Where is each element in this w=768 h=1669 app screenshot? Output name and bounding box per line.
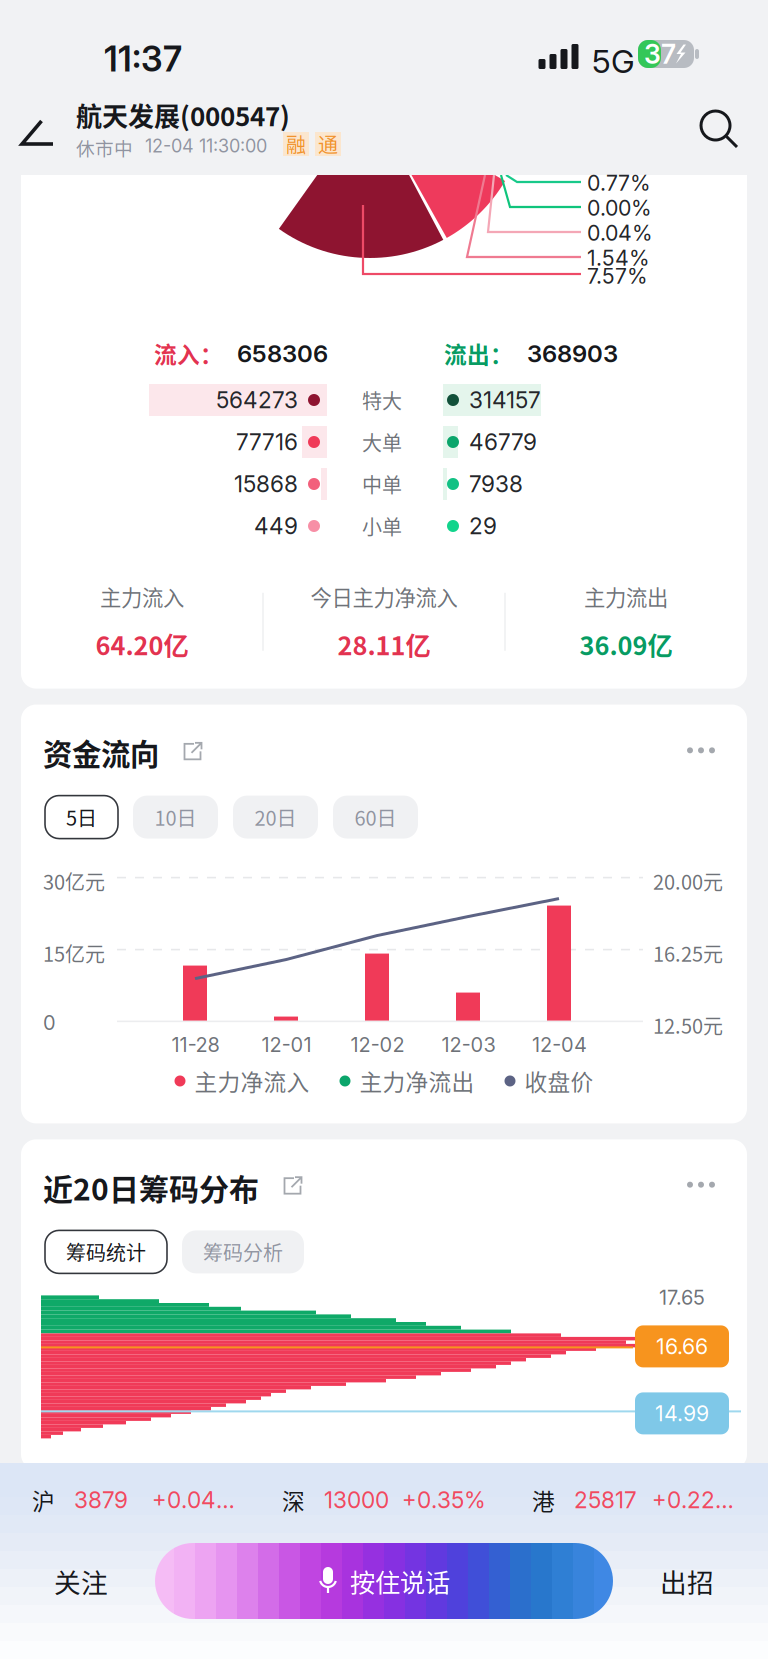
- staticText: 休市中: [76, 134, 133, 161]
- staticText: 航天发展(000547): [76, 96, 290, 134]
- staticText: 7.57%: [587, 263, 648, 289]
- staticText: 20日: [254, 803, 296, 832]
- button[interactable]: 关注: [26, 1543, 136, 1619]
- staticText: 流入：: [154, 337, 223, 370]
- staticText: 近20日筹码分布: [43, 1166, 259, 1209]
- staticText: 12-04: [532, 1033, 587, 1057]
- staticText: 主力净流入: [194, 1065, 309, 1097]
- button[interactable]: 出招: [632, 1543, 742, 1619]
- staticText: 12.50元: [653, 1011, 723, 1040]
- staticText: 11-28: [171, 1033, 219, 1057]
- staticText: 0.77%: [587, 170, 651, 196]
- button[interactable]: 10日: [133, 796, 218, 839]
- button[interactable]: 20日: [233, 796, 318, 839]
- staticText: 20.00元: [653, 867, 723, 896]
- staticText: 主力净流出: [359, 1065, 474, 1097]
- staticText: 特大: [362, 385, 402, 414]
- button[interactable]: 筹码分析: [182, 1230, 304, 1273]
- staticText: 564273: [216, 386, 298, 414]
- staticText: 60日: [354, 803, 396, 832]
- staticText: 12-02: [350, 1033, 404, 1057]
- staticText: 12-03: [441, 1033, 495, 1057]
- staticText: 深: [282, 1484, 305, 1516]
- staticText: 今日主力净流入: [310, 581, 457, 612]
- button[interactable]: More options: [681, 735, 721, 765]
- staticText: 中单: [362, 469, 402, 498]
- staticText: 15亿元: [43, 939, 105, 968]
- staticText: 流出：: [444, 337, 513, 370]
- button[interactable]: More options: [681, 1170, 721, 1200]
- staticText: 关注: [54, 1562, 108, 1600]
- button[interactable]: 港: [532, 1477, 736, 1523]
- button[interactable]: Share: [273, 1169, 313, 1203]
- button[interactable]: 深: [282, 1477, 486, 1523]
- staticText: 16.25元: [653, 939, 723, 968]
- staticText: +0.22%: [652, 1486, 736, 1514]
- staticText: 12-04 11:30:00: [145, 135, 267, 157]
- button[interactable]: 沪: [32, 1477, 236, 1523]
- button[interactable]: 按住说话: [155, 1543, 613, 1619]
- staticText: 按住说话: [350, 1563, 450, 1599]
- staticText: 10日: [154, 803, 196, 832]
- staticText: 主力流入: [100, 581, 184, 612]
- staticText: 0.04%: [587, 220, 653, 246]
- staticText: 港: [532, 1484, 555, 1516]
- staticText: 收盘价: [524, 1065, 593, 1097]
- staticText: 36.09亿: [579, 626, 672, 663]
- staticText: 11:37: [104, 38, 182, 80]
- staticText: 658306: [237, 339, 328, 368]
- staticText: 5日: [66, 803, 97, 832]
- staticText: 出招: [660, 1562, 714, 1600]
- staticText: 小单: [362, 511, 402, 540]
- staticText: 7938: [469, 470, 523, 498]
- staticText: 30亿元: [43, 867, 105, 896]
- staticText: 449: [254, 512, 298, 540]
- button[interactable]: Share: [173, 734, 213, 768]
- button[interactable]: Back: [8, 104, 66, 162]
- staticText: 1.54%: [587, 245, 650, 271]
- staticText: +0.04%: [152, 1486, 236, 1514]
- staticText: 通: [318, 129, 338, 158]
- staticText: 沪: [32, 1484, 55, 1516]
- staticText: 64.20亿: [95, 626, 188, 663]
- staticText: +0.35%: [402, 1486, 486, 1514]
- staticText: 37: [644, 38, 676, 70]
- staticText: 15868: [234, 470, 298, 498]
- staticText: 314157: [469, 386, 541, 414]
- staticText: 29: [469, 512, 497, 540]
- button[interactable]: 60日: [333, 796, 418, 839]
- button[interactable]: 筹码统计: [45, 1230, 167, 1273]
- button[interactable]: Search: [692, 102, 750, 160]
- staticText: 25817: [574, 1486, 637, 1514]
- staticText: 13000: [324, 1486, 389, 1514]
- staticText: 12-01: [261, 1033, 311, 1057]
- staticText: 3879: [74, 1486, 128, 1514]
- staticText: 16.66: [656, 1333, 708, 1359]
- staticText: 14.99: [655, 1400, 709, 1426]
- staticText: 0.00%: [587, 195, 652, 221]
- staticText: 融: [286, 129, 306, 158]
- staticText: 28.11亿: [337, 626, 430, 663]
- staticText: 主力流出: [584, 581, 668, 612]
- staticText: 大单: [362, 427, 402, 456]
- staticText: 77716: [236, 428, 298, 456]
- staticText: 筹码分析: [203, 1237, 283, 1266]
- staticText: 46779: [469, 428, 537, 456]
- staticText: 5G: [592, 42, 635, 81]
- staticText: 368903: [527, 339, 618, 368]
- button[interactable]: 5日: [45, 796, 118, 839]
- staticText: 筹码统计: [66, 1237, 146, 1266]
- staticText: 资金流向: [43, 731, 159, 774]
- staticText: 0: [43, 1011, 56, 1035]
- staticText: 17.65: [659, 1285, 705, 1310]
